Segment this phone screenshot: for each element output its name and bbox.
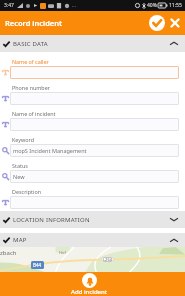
button[interactable]: Description bbox=[0, 183, 185, 209]
staticText: zbach bbox=[0, 249, 17, 257]
staticText: MAP bbox=[13, 236, 27, 244]
button[interactable]: Phone number bbox=[0, 79, 185, 105]
staticText: Status bbox=[12, 162, 28, 169]
staticText: L264 bbox=[103, 257, 112, 262]
button[interactable]: Close bbox=[166, 14, 184, 32]
staticText: Record incident bbox=[5, 18, 63, 28]
button[interactable]: Keyword bbox=[0, 131, 185, 157]
button[interactable]: Add incident bbox=[0, 272, 185, 296]
button[interactable]: MAP bbox=[0, 233, 185, 247]
staticText: Phone number bbox=[12, 84, 50, 91]
staticText: Hof bbox=[59, 250, 66, 255]
button[interactable]: Status bbox=[0, 157, 185, 183]
staticText: 11:55 bbox=[169, 2, 182, 9]
staticText: Add incident bbox=[71, 288, 108, 296]
staticText: 3:47 bbox=[4, 2, 14, 9]
staticText: Description bbox=[12, 188, 42, 195]
button[interactable]: Save bbox=[147, 13, 167, 33]
button[interactable]: BASIC DATA bbox=[0, 35, 185, 52]
staticText: Name of incident bbox=[12, 110, 56, 117]
staticText: BASIC DATA bbox=[13, 40, 48, 48]
staticText: LOCATION INFORMATION bbox=[13, 216, 90, 224]
staticText: 40% bbox=[147, 2, 157, 9]
button[interactable]: LOCATION INFORMATION bbox=[0, 211, 185, 228]
button[interactable]: Name of incident bbox=[0, 105, 185, 131]
staticText: New bbox=[13, 173, 25, 180]
button[interactable]: Name of caller bbox=[0, 53, 185, 79]
staticText: mopS Incident Management bbox=[13, 147, 87, 154]
staticText: ... bbox=[72, 2, 77, 9]
staticText: B44 bbox=[33, 262, 42, 268]
staticText: Keyword bbox=[12, 136, 34, 143]
staticText: Name of caller bbox=[12, 58, 49, 65]
